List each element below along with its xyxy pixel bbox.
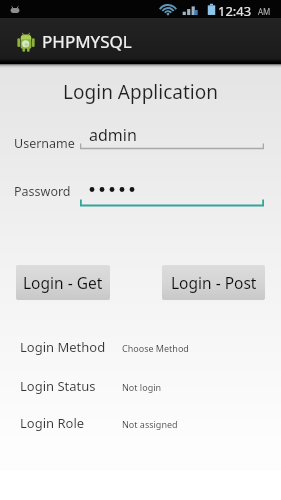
staticText: Login - Post (171, 272, 257, 293)
other: Notification (8, 4, 22, 16)
staticText: Password (14, 183, 71, 200)
staticText: 12:43 (218, 2, 252, 20)
staticText: Choose Method (122, 342, 189, 354)
staticText: Login - Get (23, 272, 103, 293)
staticText: Login Application (0, 79, 281, 105)
staticText: Username (14, 135, 75, 152)
staticText: Login Method (20, 338, 106, 356)
staticText: Login Role (20, 414, 85, 432)
button[interactable]: Login - Post (162, 265, 265, 300)
staticText: PHPMYSQL (42, 30, 132, 53)
staticText: Not assigned (122, 418, 178, 430)
staticText: AM (258, 6, 271, 17)
staticText: Login Status (20, 377, 96, 395)
staticText: admin (89, 124, 137, 146)
button[interactable]: Login - Get (16, 265, 110, 300)
staticText: Not login (122, 381, 162, 393)
